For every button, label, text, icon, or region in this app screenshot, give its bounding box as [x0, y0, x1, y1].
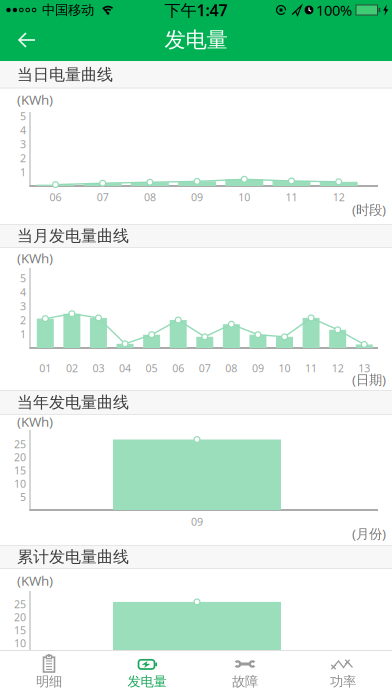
- staticText: 20: [14, 450, 26, 464]
- staticText: 下午1:47: [164, 0, 227, 21]
- staticText: 4: [20, 285, 26, 299]
- staticText: 当年发电量曲线: [17, 393, 129, 412]
- staticText: 05: [146, 361, 158, 375]
- staticText: 01: [39, 361, 51, 375]
- staticText: 累计发电量曲线: [17, 547, 129, 567]
- staticText: 功率: [330, 673, 356, 690]
- staticText: 15: [14, 463, 26, 477]
- staticText: 13: [358, 361, 370, 375]
- staticText: (月份): [352, 525, 386, 542]
- staticText: 中国移动: [42, 2, 94, 18]
- staticText: 12: [333, 190, 345, 204]
- button[interactable]: 故障: [196, 650, 294, 696]
- staticText: 3: [20, 299, 26, 313]
- button[interactable]: 明细: [0, 650, 98, 696]
- staticText: 10: [238, 190, 250, 204]
- button[interactable]: Back: [5, 20, 49, 60]
- staticText: 1: [20, 165, 26, 179]
- staticText: 10: [278, 361, 290, 375]
- staticText: 09: [191, 514, 203, 529]
- staticText: 10: [14, 636, 26, 650]
- staticText: 11: [305, 361, 317, 375]
- staticText: 4: [20, 123, 26, 137]
- staticText: 07: [199, 361, 211, 375]
- staticText: 07: [97, 190, 109, 204]
- button[interactable]: 发电量: [98, 650, 196, 696]
- staticText: 08: [144, 190, 156, 204]
- staticText: 20: [14, 610, 26, 624]
- staticText: 02: [66, 361, 78, 375]
- staticText: 15: [14, 623, 26, 637]
- staticText: (KWh): [17, 572, 53, 589]
- staticText: 03: [92, 361, 104, 375]
- staticText: 5: [20, 109, 26, 123]
- staticText: 08: [225, 361, 237, 375]
- staticText: (KWh): [17, 91, 53, 108]
- staticText: 当月发电量曲线: [17, 226, 129, 246]
- staticText: 10: [14, 476, 26, 491]
- staticText: (KWh): [17, 249, 53, 267]
- staticText: 09: [191, 190, 203, 204]
- staticText: 06: [49, 190, 61, 204]
- staticText: 11: [285, 190, 297, 204]
- staticText: (时段): [352, 201, 386, 218]
- staticText: 1: [20, 327, 26, 341]
- staticText: 5: [20, 271, 26, 285]
- staticText: (日期): [352, 371, 386, 388]
- button[interactable]: 功率: [294, 650, 392, 696]
- staticText: 明细: [36, 673, 62, 690]
- staticText: 04: [119, 361, 131, 375]
- staticText: 12: [332, 361, 344, 375]
- staticText: 故障: [232, 673, 258, 690]
- staticText: 09: [252, 361, 264, 375]
- staticText: (KWh): [17, 413, 53, 430]
- staticText: 发电量: [164, 27, 227, 53]
- staticText: 2: [20, 313, 26, 327]
- staticText: 当日电量曲线: [17, 65, 113, 85]
- staticText: 5: [20, 490, 26, 504]
- staticText: 5: [20, 649, 26, 663]
- staticText: 100%: [316, 0, 352, 20]
- staticText: 06: [172, 361, 184, 375]
- staticText: 3: [20, 137, 26, 151]
- staticText: 发电量: [127, 673, 166, 690]
- staticText: 25: [14, 437, 26, 451]
- staticText: 25: [14, 597, 26, 611]
- staticText: 2: [20, 151, 26, 165]
